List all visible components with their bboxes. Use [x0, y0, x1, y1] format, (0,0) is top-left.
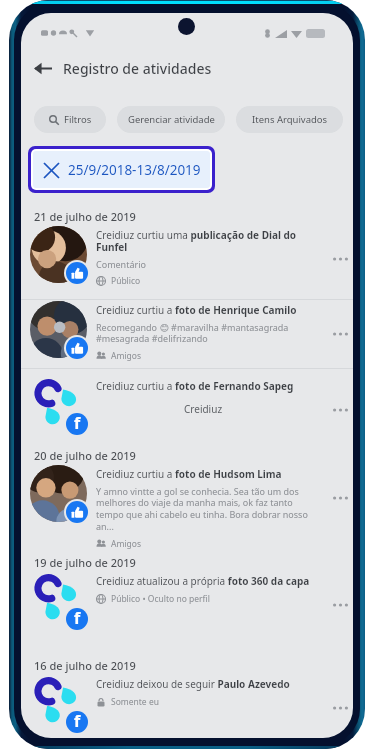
- staticText: Y amno vintte a gol se conhecia. Sea tão…: [96, 485, 310, 533]
- staticText: 20 de julho de 2019: [34, 448, 136, 463]
- staticText: 16 de julho de 2019: [34, 658, 136, 673]
- staticText: Filtros: [64, 113, 92, 126]
- staticText: Comentário: [96, 258, 146, 270]
- button[interactable]: Creidiuz curtiu a foto de Hudsom Lima: [21, 465, 353, 550]
- button[interactable]: More options: [310, 591, 348, 619]
- button[interactable]: Gerenciar atividade: [117, 106, 225, 133]
- button[interactable]: More options: [310, 484, 348, 512]
- staticText: f: [74, 413, 81, 434]
- button[interactable]: Creidiuz curtiu uma publicação de Dial d…: [21, 226, 353, 287]
- button[interactable]: 25/9/2018-13/8/2019: [28, 146, 215, 193]
- button[interactable]: More options: [310, 245, 348, 273]
- staticText: Itens Arquivados: [252, 113, 328, 126]
- staticText: Público: [111, 275, 141, 287]
- staticText: 19 de julho de 2019: [34, 555, 136, 570]
- button[interactable]: f: [21, 377, 353, 434]
- staticText: Somente eu: [111, 696, 159, 708]
- button[interactable]: More options: [310, 694, 348, 722]
- button[interactable]: Back: [30, 55, 56, 81]
- button[interactable]: Filtros: [34, 106, 106, 133]
- staticText: f: [74, 608, 81, 629]
- button[interactable]: Itens Arquivados: [236, 106, 343, 133]
- staticText: Creidiuz atualizou a própria foto 360 da…: [96, 574, 310, 588]
- staticText: Creidiuz curtiu a foto de Henrique Camil…: [96, 303, 297, 317]
- staticText: f: [74, 711, 81, 732]
- button[interactable]: Creidiuz curtiu a foto de Henrique Camil…: [21, 301, 353, 362]
- staticText: Público • Oculto no perfil: [111, 593, 210, 605]
- staticText: Creidiuz curtiu a foto de Fernando Sapeg: [96, 379, 294, 393]
- button[interactable]: f: [21, 572, 353, 629]
- button[interactable]: More options: [310, 320, 348, 348]
- staticText: 21 de julho de 2019: [34, 209, 136, 224]
- button[interactable]: More options: [310, 396, 348, 424]
- staticText: Creidiuz: [184, 402, 223, 416]
- staticText: Creidiuz curtiu uma publicação de Dial d…: [96, 228, 310, 254]
- staticText: Amigos: [111, 350, 142, 362]
- staticText: Creidiuz curtiu a foto de Hudsom Lima: [96, 467, 282, 481]
- staticText: Amigos: [111, 538, 142, 550]
- staticText: Recomegando 😊 #maravilha #mantasagrada #…: [96, 321, 310, 345]
- button[interactable]: f: [21, 675, 353, 732]
- staticText: Registro de atividades: [63, 59, 212, 78]
- staticText: 25/9/2018-13/8/2019: [68, 161, 201, 179]
- staticText: Gerenciar atividade: [128, 113, 215, 126]
- staticText: Creidiuz deixou de seguir Paulo Azevedo: [96, 677, 290, 691]
